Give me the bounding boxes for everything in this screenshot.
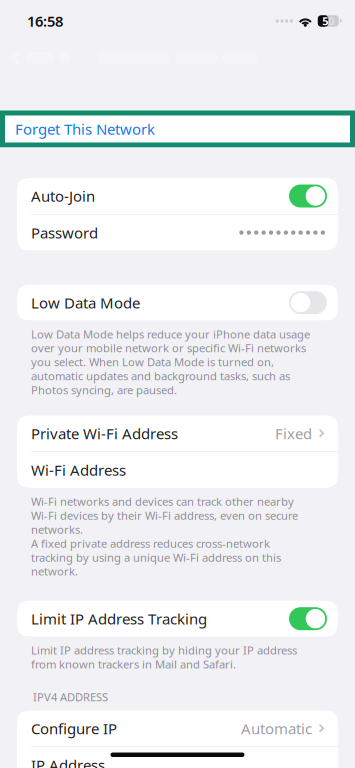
staticText: Wi-Fi networks and devices can track oth… — [31, 494, 298, 579]
staticText: Forget This Network — [15, 119, 155, 139]
button[interactable]: IP Address — [17, 747, 338, 768]
staticText: Limit IP address tracking by hiding your… — [31, 643, 297, 671]
staticText: Password — [31, 223, 98, 242]
staticText: IPV4 ADDRESS — [33, 690, 108, 704]
button[interactable]: Low Data Mode — [17, 285, 338, 321]
staticText: Low Data Mode helps reduce your iPhone d… — [31, 327, 310, 397]
button[interactable]: Wi-Fi Address — [17, 452, 338, 488]
staticText: 50 — [322, 14, 334, 28]
staticText: 50 — [322, 14, 334, 28]
staticText: Fixed — [275, 423, 312, 443]
button[interactable]: Limit IP Address Tracking — [17, 601, 338, 637]
button[interactable]: Configure IP — [17, 710, 338, 746]
button[interactable]: Private Wi-Fi Address — [17, 415, 338, 451]
staticText: Wi-Fi Address — [31, 460, 126, 480]
staticText: Auto-Join — [31, 186, 95, 206]
staticText: IP Address — [31, 755, 105, 768]
button[interactable]: Auto-Join — [17, 178, 338, 214]
staticText: Private Wi-Fi Address — [31, 423, 178, 443]
staticText: Low Data Mode — [31, 293, 140, 312]
staticText: Automatic — [241, 718, 312, 738]
staticText: Configure IP — [31, 718, 117, 738]
staticText: 16:58 — [27, 11, 63, 31]
button[interactable]: Password — [17, 215, 338, 251]
staticText: Limit IP Address Tracking — [31, 609, 207, 629]
button[interactable]: Forget This Network — [0, 110, 355, 147]
